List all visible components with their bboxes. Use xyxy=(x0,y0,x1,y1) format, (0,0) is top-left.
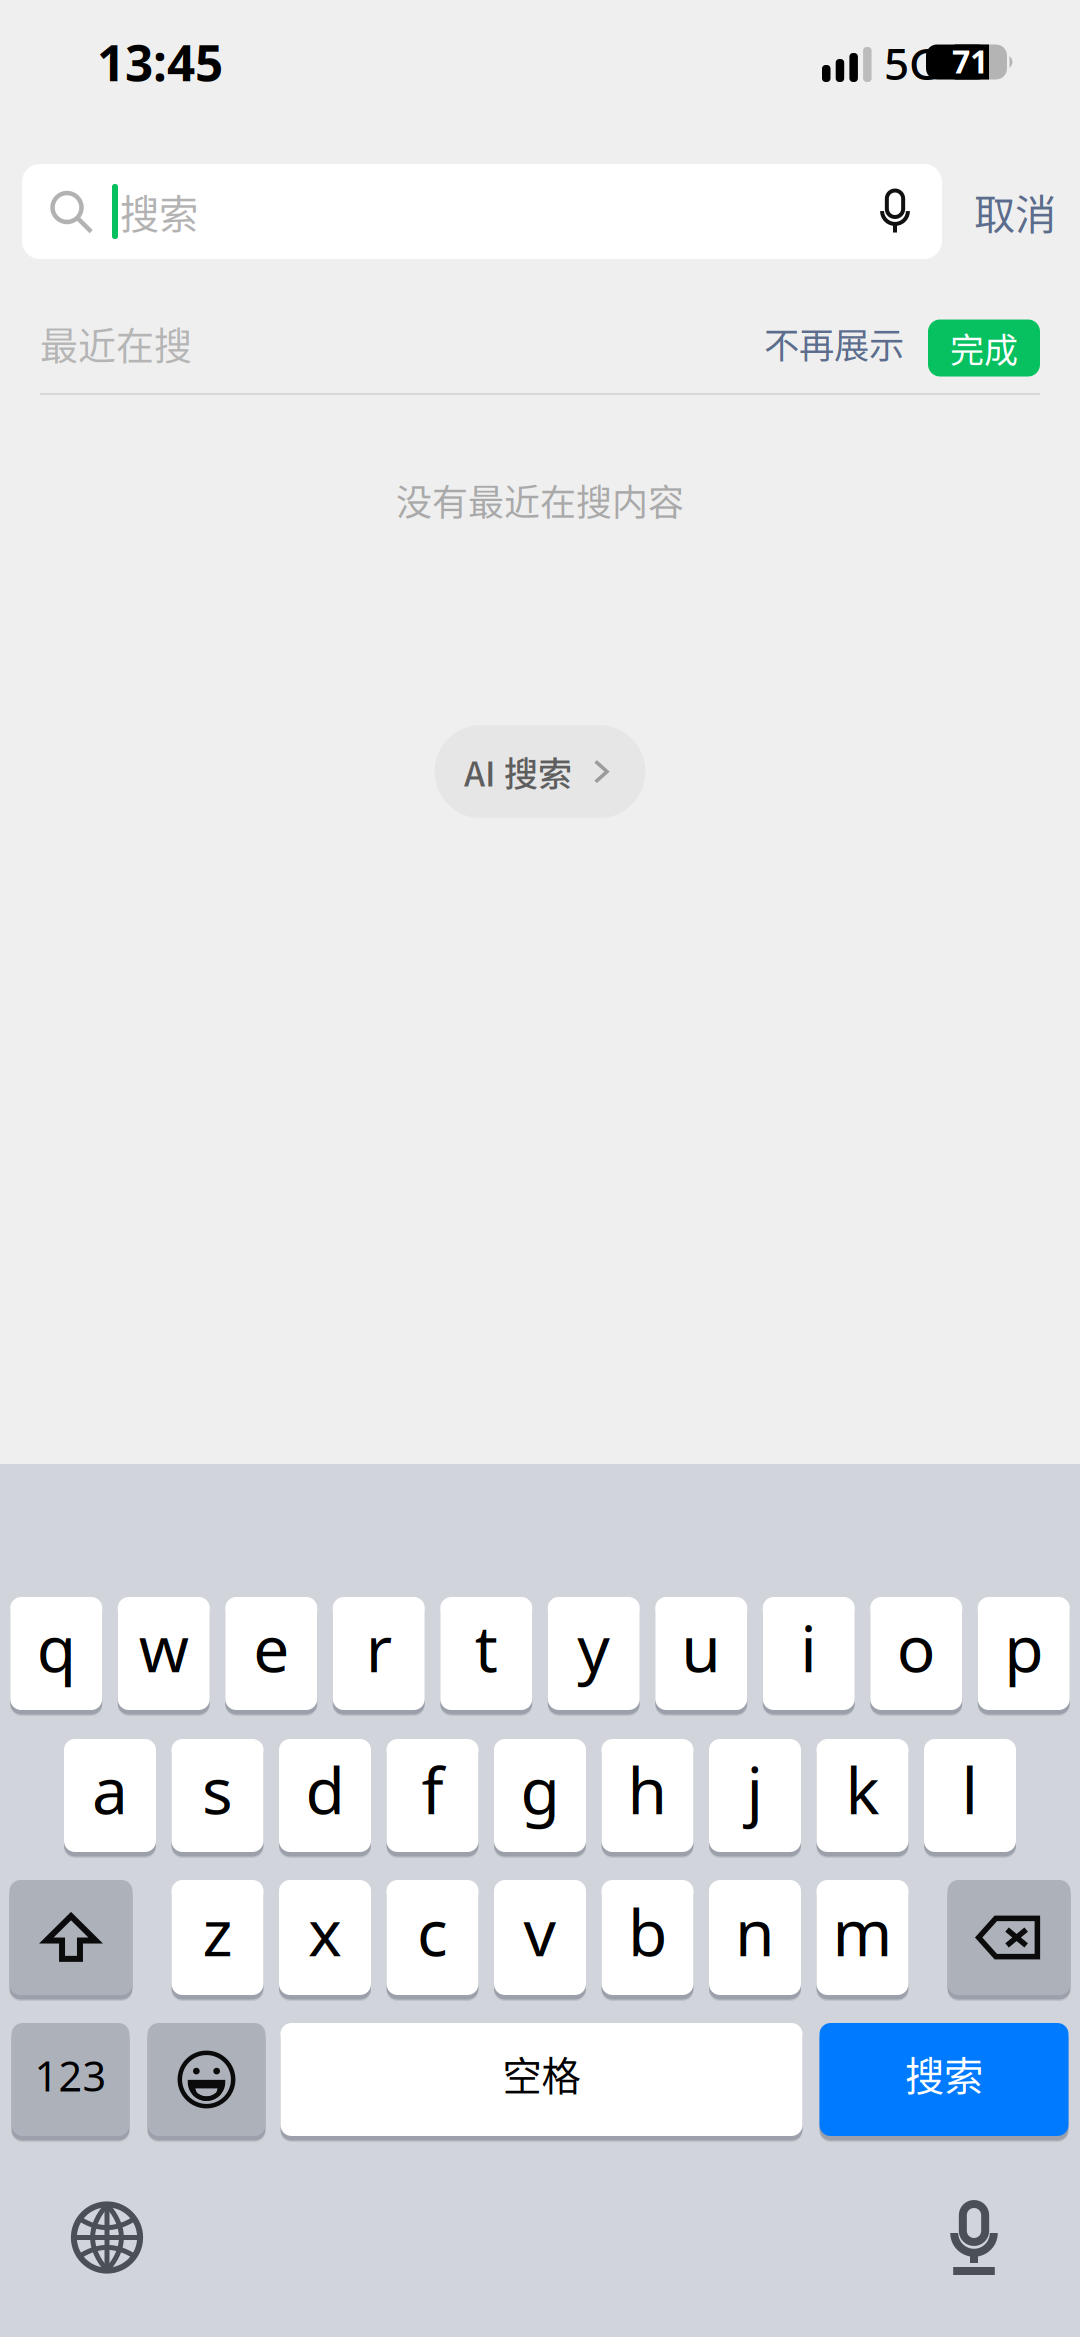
button[interactable]: n xyxy=(709,1880,801,1999)
staticText: 123 xyxy=(34,2048,106,2103)
staticText: r xyxy=(366,1605,392,1690)
button[interactable]: r xyxy=(333,1597,425,1714)
button[interactable]: c xyxy=(386,1880,478,1999)
staticText: s xyxy=(202,1747,233,1832)
button[interactable]: a xyxy=(64,1739,156,1856)
button[interactable]: 切换输入法 xyxy=(71,2201,143,2273)
staticText: 13:45 xyxy=(97,29,223,95)
staticText: n xyxy=(735,1889,775,1974)
staticText: c xyxy=(417,1889,448,1974)
staticText: 完成 xyxy=(950,323,1018,373)
button[interactable]: 123 xyxy=(11,2023,129,2140)
staticText: o xyxy=(897,1605,936,1690)
button[interactable]: v xyxy=(494,1880,586,1999)
button[interactable]: 语音输入 xyxy=(948,2200,1000,2275)
button[interactable]: j xyxy=(709,1739,801,1856)
staticText: 5G xyxy=(884,34,941,92)
staticText: k xyxy=(845,1747,879,1832)
staticText: y xyxy=(577,1605,610,1690)
staticText: d xyxy=(305,1747,344,1832)
button[interactable]: 完成 xyxy=(928,314,1040,371)
staticText: 搜索 xyxy=(905,2045,983,2102)
staticText: a xyxy=(92,1747,128,1832)
button[interactable]: x xyxy=(279,1880,371,1999)
button[interactable]: u xyxy=(655,1597,747,1714)
staticText: f xyxy=(421,1747,443,1832)
staticText: 71 xyxy=(952,40,988,82)
staticText: t xyxy=(475,1605,498,1690)
button[interactable]: Emoji xyxy=(147,2023,265,2140)
staticText: 取消 xyxy=(974,182,1056,241)
staticText: z xyxy=(202,1889,232,1974)
button[interactable]: m xyxy=(816,1880,908,1999)
staticText: h xyxy=(627,1747,667,1832)
button[interactable]: k xyxy=(816,1739,908,1856)
button[interactable]: AI 搜索 xyxy=(434,725,645,818)
staticText: w xyxy=(139,1605,189,1690)
button[interactable]: 语音搜索 xyxy=(878,188,912,234)
staticText: e xyxy=(253,1605,289,1690)
staticText: u xyxy=(681,1605,721,1690)
staticText: b xyxy=(628,1889,667,1974)
button[interactable]: g xyxy=(494,1739,586,1856)
button[interactable]: y xyxy=(548,1597,640,1714)
button[interactable]: z xyxy=(171,1880,263,1999)
button[interactable]: l xyxy=(924,1739,1016,1856)
button[interactable]: w xyxy=(118,1597,210,1714)
button[interactable]: o xyxy=(870,1597,962,1714)
staticText: 最近在搜 xyxy=(40,315,192,370)
button[interactable]: Shift xyxy=(9,1880,132,1999)
button[interactable]: q xyxy=(10,1597,102,1714)
button[interactable]: 空格 xyxy=(280,2023,802,2140)
button[interactable]: d xyxy=(279,1739,371,1856)
button[interactable]: t xyxy=(440,1597,532,1714)
button[interactable]: f xyxy=(386,1739,478,1856)
staticText: p xyxy=(1004,1605,1043,1690)
staticText: i xyxy=(800,1605,817,1690)
staticText: l xyxy=(961,1747,978,1832)
staticText: x xyxy=(308,1889,342,1974)
staticText: m xyxy=(832,1889,892,1974)
button[interactable]: e xyxy=(225,1597,317,1714)
staticText: AI 搜索 xyxy=(464,747,572,796)
staticText: q xyxy=(37,1605,76,1690)
staticText: g xyxy=(520,1747,559,1832)
button[interactable]: 搜索 xyxy=(819,2023,1068,2140)
button[interactable]: 取消 xyxy=(974,182,1056,241)
staticText: 空格 xyxy=(502,2045,580,2102)
staticText: v xyxy=(523,1889,556,1974)
button[interactable]: p xyxy=(978,1597,1070,1714)
button[interactable]: i xyxy=(763,1597,855,1714)
button[interactable]: Delete xyxy=(947,1880,1070,1999)
staticText: 搜索 xyxy=(120,183,198,240)
staticText: 不再展示 xyxy=(764,317,904,369)
button[interactable]: b xyxy=(601,1880,693,1999)
staticText: j xyxy=(746,1747,763,1832)
button[interactable]: h xyxy=(601,1739,693,1856)
staticText: 没有最近在搜内容 xyxy=(396,474,684,526)
button[interactable]: s xyxy=(171,1739,263,1856)
button[interactable]: 不再展示 xyxy=(764,317,904,369)
